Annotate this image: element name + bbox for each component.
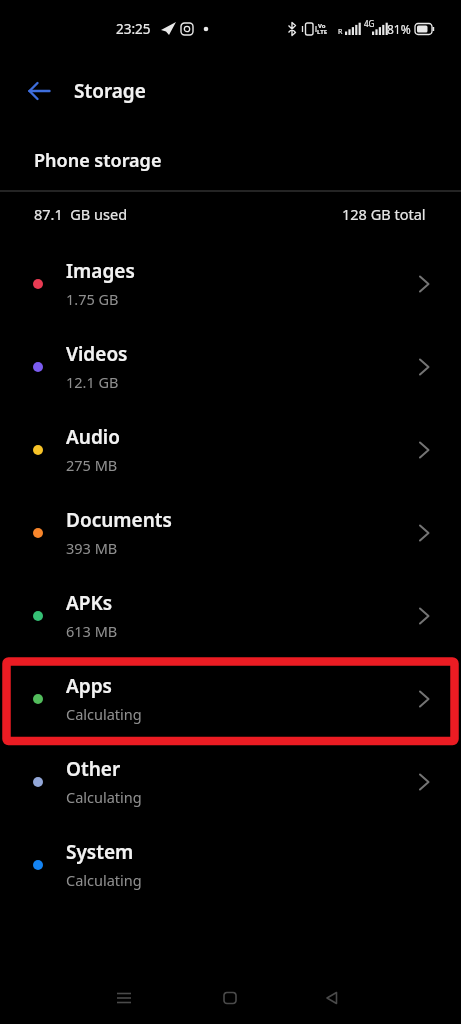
staticText: 275 MB	[66, 455, 118, 475]
staticText: 12.1 GB	[66, 372, 119, 392]
staticText: LTE	[317, 28, 328, 36]
button[interactable]	[22, 73, 58, 109]
button[interactable]: Apps	[0, 657, 461, 740]
button[interactable]: Videos	[0, 325, 461, 408]
button[interactable]	[308, 974, 356, 1022]
staticText: Other	[66, 756, 121, 782]
staticText: System	[66, 839, 134, 865]
button[interactable]	[100, 974, 148, 1022]
staticText: Audio	[66, 424, 120, 450]
staticText: Phone storage	[34, 148, 162, 173]
button[interactable]: APKs	[0, 574, 461, 657]
button[interactable]: Documents	[0, 491, 461, 574]
button[interactable]	[206, 974, 254, 1022]
staticText: Storage	[74, 78, 146, 104]
staticText: 128 GB total	[342, 204, 426, 224]
button[interactable]: Other	[0, 740, 461, 823]
staticText: Vo	[318, 22, 326, 30]
staticText: Calculating	[66, 870, 142, 890]
staticText: Apps	[66, 673, 112, 699]
staticText: Documents	[66, 507, 172, 533]
staticText: 4G	[364, 18, 375, 29]
staticText: Calculating	[66, 787, 142, 807]
staticText: 1.75 GB	[66, 289, 119, 309]
staticText: 81%	[387, 21, 411, 37]
button[interactable]: System	[0, 823, 461, 906]
staticText: R	[338, 27, 343, 37]
staticText: 23:25	[116, 20, 151, 38]
staticText: Calculating	[66, 704, 142, 724]
staticText: APKs	[66, 590, 113, 616]
staticText: Images	[66, 258, 135, 284]
staticText: Videos	[66, 341, 128, 367]
button[interactable]: Images	[0, 242, 461, 325]
staticText: 613 MB	[66, 621, 118, 641]
staticText: 393 MB	[66, 538, 118, 558]
button[interactable]: Audio	[0, 408, 461, 491]
staticText: 87.1 GB used	[34, 204, 128, 224]
